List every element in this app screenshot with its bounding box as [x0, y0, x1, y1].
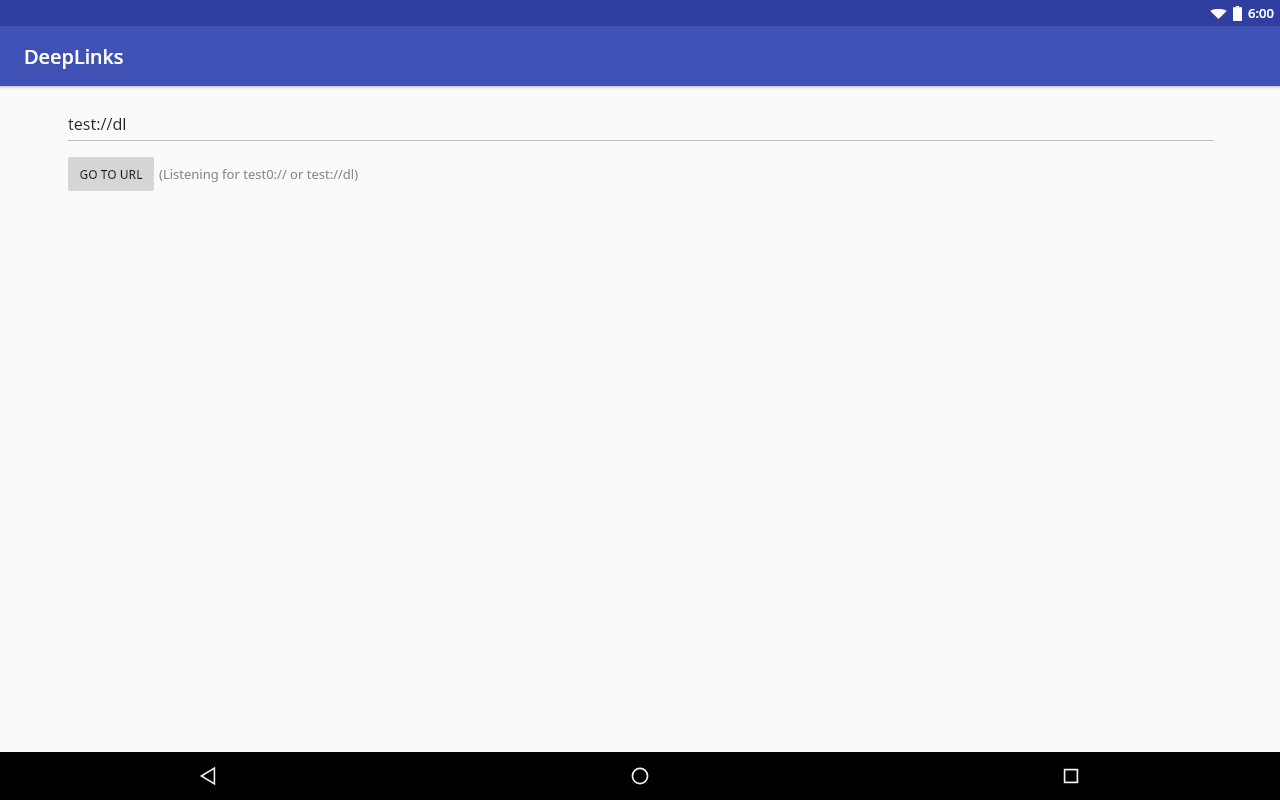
button[interactable]: Home — [426, 752, 853, 800]
button[interactable]: GO TO URL — [68, 157, 154, 191]
button[interactable]: Back — [0, 752, 426, 800]
staticText: DeepLinks — [24, 43, 124, 70]
staticText: test://dl — [68, 113, 127, 135]
staticText: (Listening for test0:// or test://dl) — [159, 165, 359, 183]
button[interactable]: test://dl — [68, 113, 1214, 141]
staticText: 6:00 — [1248, 4, 1274, 22]
staticText: GO TO URL — [79, 166, 143, 182]
button[interactable]: Recent apps — [853, 752, 1280, 800]
